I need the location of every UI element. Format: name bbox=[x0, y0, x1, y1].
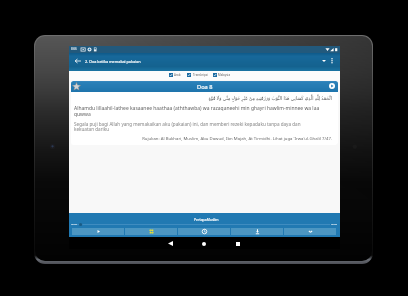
staticText: Segala puji bagi Allah yang memakaikan a… bbox=[74, 121, 301, 127]
button[interactable]: Collapse bbox=[284, 228, 336, 235]
staticText: الْحَمْدُ لِلَّهِ الَّذِي كَسَانِي هَذَا… bbox=[74, 95, 332, 101]
staticText: Rujukan: Al Bukhari, Muslim, Abu Dawud, … bbox=[76, 135, 332, 141]
button[interactable]: Transkripsi bbox=[186, 71, 208, 79]
staticText: 2. Doa ketika memakai pakaian bbox=[85, 59, 141, 64]
staticText: quwwa bbox=[74, 111, 91, 118]
staticText: Transkripsi bbox=[193, 73, 209, 77]
button[interactable]: Back bbox=[72, 55, 84, 66]
button[interactable]: Information bbox=[178, 228, 230, 235]
button[interactable]: Back bbox=[162, 238, 178, 249]
staticText: 00:00 bbox=[71, 222, 78, 225]
staticText: 00:00 bbox=[331, 222, 338, 225]
button[interactable]: More options bbox=[326, 55, 338, 66]
staticText: kekuatan dariku bbox=[74, 126, 110, 132]
button[interactable]: Play audio bbox=[329, 83, 335, 89]
staticText: Doa 8 bbox=[197, 83, 213, 91]
button[interactable] bbox=[71, 81, 338, 92]
button[interactable]: Repeat bbox=[125, 228, 177, 235]
other: Bookmark bbox=[73, 83, 80, 90]
staticText: Arab bbox=[174, 73, 181, 77]
staticText: PertapaMuslim bbox=[194, 217, 219, 222]
staticText: Malaysia bbox=[218, 73, 231, 77]
button[interactable]: Play bbox=[72, 228, 124, 235]
staticText: 8:56 bbox=[71, 47, 77, 51]
staticText: Alhamdu lillaahil-lathee kasaanee haatha… bbox=[74, 105, 320, 112]
button[interactable]: Dropdown menu bbox=[318, 55, 330, 66]
button[interactable]: Malaysia bbox=[213, 71, 232, 79]
button[interactable]: Home bbox=[196, 238, 212, 249]
button[interactable]: Arab bbox=[168, 71, 182, 79]
button[interactable]: Download bbox=[231, 228, 283, 235]
button[interactable]: Recent apps bbox=[230, 238, 246, 249]
